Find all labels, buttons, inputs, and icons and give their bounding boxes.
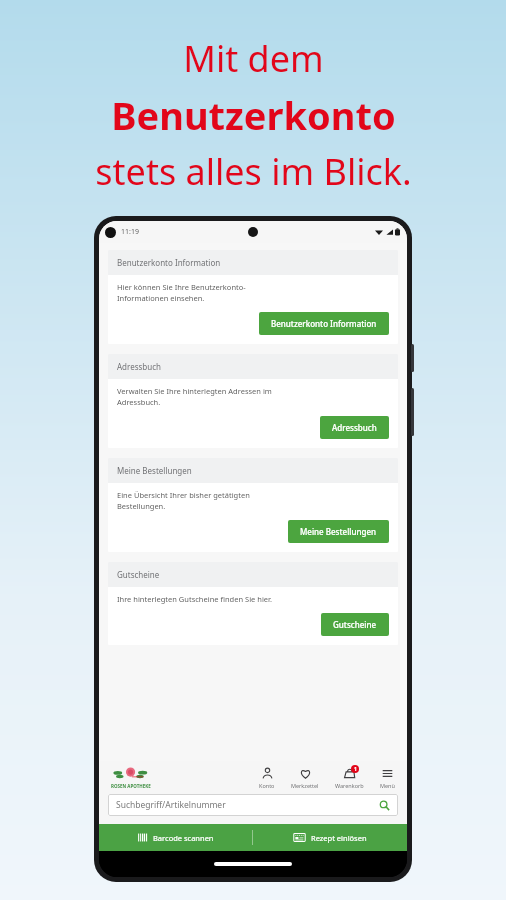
staticText: Benutzerkonto (111, 89, 396, 141)
button[interactable]: Adressbuch (320, 416, 389, 439)
staticText: Suchbegriff/Artikelnummer (116, 799, 226, 811)
staticText: ROSEN APOTHEKE (111, 783, 151, 789)
button[interactable]: Meine Bestellungen (108, 458, 398, 552)
staticText: Konto (259, 782, 275, 789)
staticText: Benutzerkonto Information (271, 318, 377, 329)
button[interactable]: Meine Bestellungen (288, 520, 389, 543)
staticText: Adressbuch (332, 422, 377, 433)
staticText: stets alles im Blick. (95, 147, 412, 196)
other: Suchen (379, 800, 390, 811)
staticText: Mit dem (183, 34, 324, 83)
staticText: Meine Bestellungen (300, 526, 377, 537)
staticText: Warenkorb (335, 782, 364, 789)
staticText: Hier können Sie Ihre Benutzerkonto- Info… (117, 282, 246, 303)
staticText: Verwalten Sie Ihre hinterlegten Adressen… (117, 386, 272, 407)
staticText: Gutscheine (333, 619, 377, 630)
staticText: Benutzerkonto Information (117, 257, 221, 268)
button[interactable]: Menü (378, 767, 397, 789)
staticText: 11:19 (121, 227, 139, 237)
staticText: Adressbuch (117, 361, 161, 372)
staticText: Rezept einlösen (311, 833, 367, 843)
button[interactable]: Gutscheine (108, 562, 398, 645)
staticText: Meine Bestellungen (117, 465, 192, 476)
button[interactable]: 1 (333, 767, 366, 789)
button[interactable]: Suchbegriff/Artikelnummer (108, 794, 398, 816)
button[interactable]: Benutzerkonto Information (108, 250, 398, 344)
button[interactable]: Konto (257, 767, 277, 789)
button[interactable]: Merkzettel (289, 767, 321, 789)
staticText: Menü (380, 782, 395, 789)
button[interactable]: Benutzerkonto Information (259, 312, 389, 335)
button[interactable]: Rezept einlösen (253, 824, 407, 851)
button[interactable]: Barcode scannen (99, 824, 252, 851)
staticText: Eine Übersicht Ihrer bisher getätigten B… (117, 490, 250, 511)
button[interactable]: Rosen Apotheke Home (109, 766, 153, 789)
staticText: Ihre hinterlegten Gutscheine finden Sie … (117, 594, 272, 604)
staticText: 1 (354, 766, 357, 773)
staticText: Merkzettel (291, 782, 319, 789)
button[interactable]: Gutscheine (321, 613, 389, 636)
staticText: Gutscheine (117, 569, 160, 580)
button[interactable]: Adressbuch (108, 354, 398, 448)
staticText: Barcode scannen (153, 833, 214, 843)
